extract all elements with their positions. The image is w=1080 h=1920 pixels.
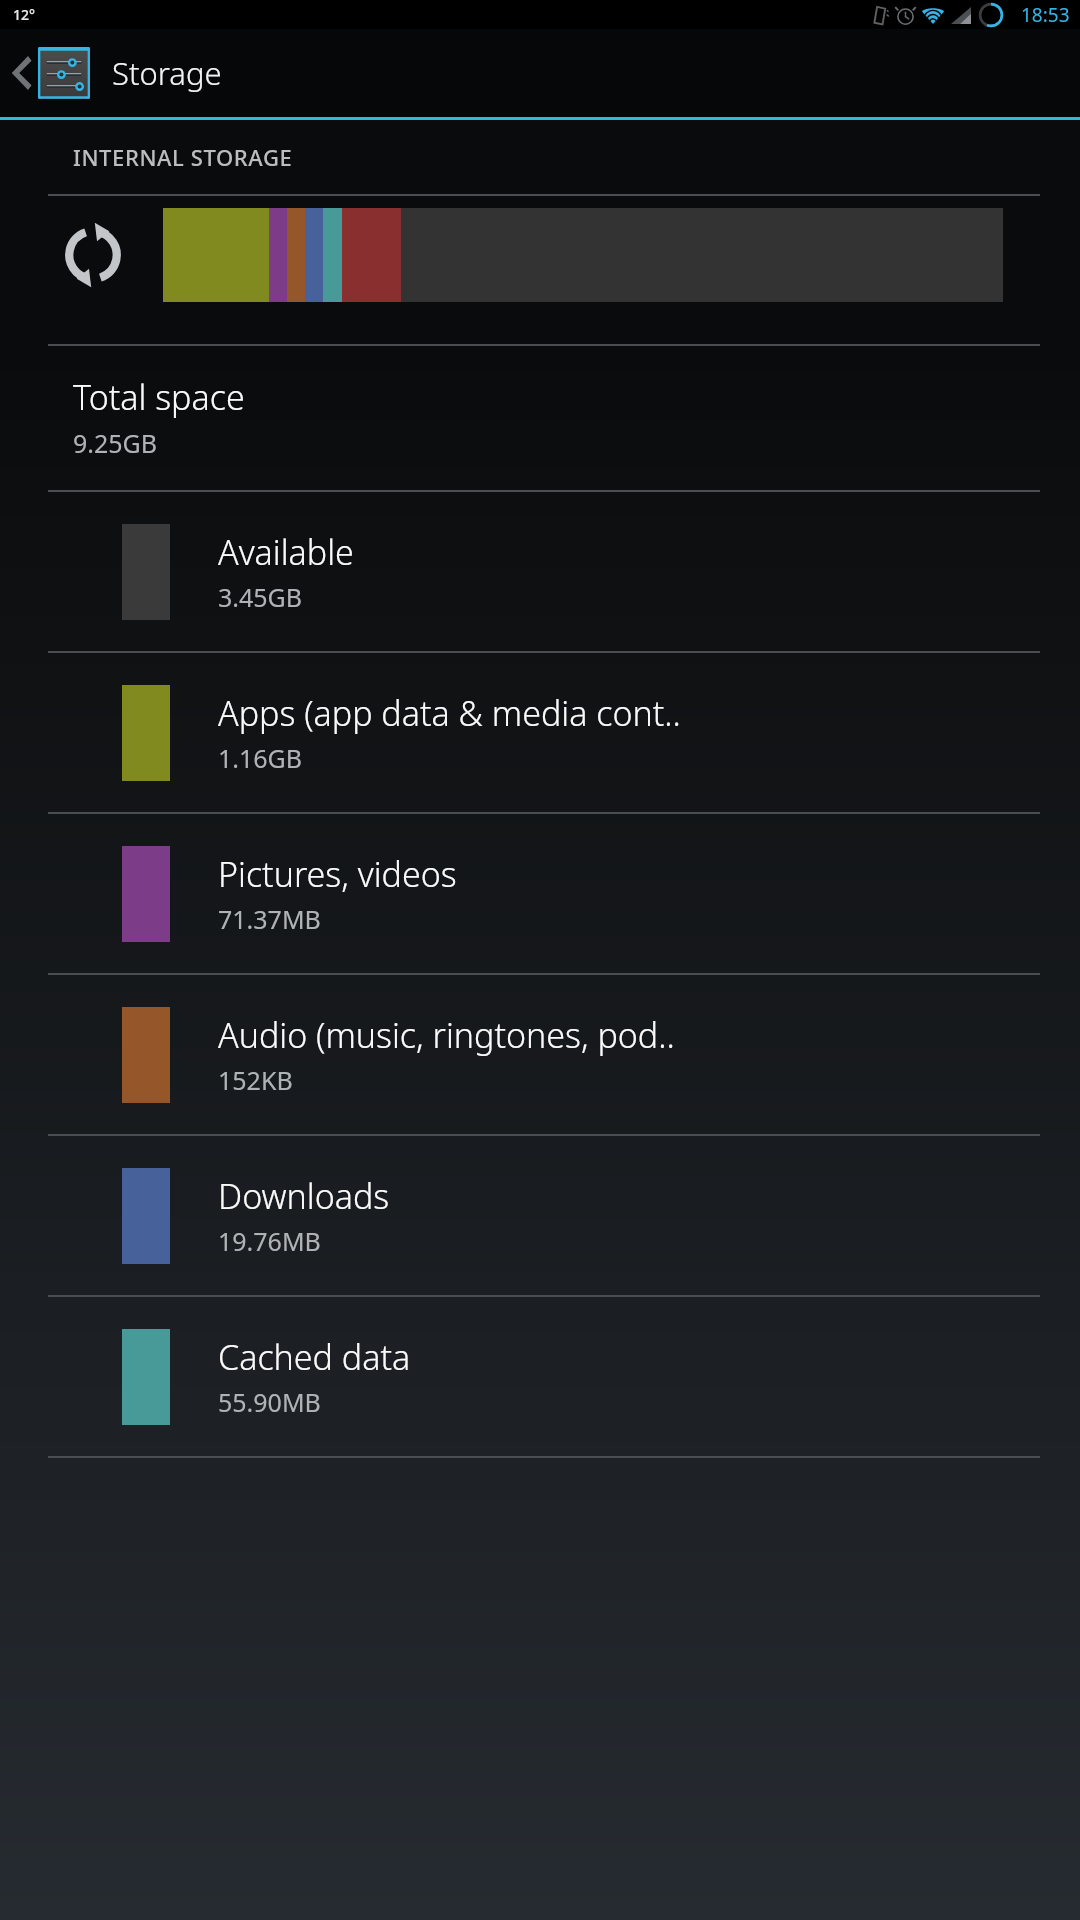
staticText: Audio (music, ringtones, pod..: [218, 1012, 675, 1058]
button[interactable]: Navigate up: [0, 29, 96, 117]
staticText: 1.16GB: [218, 741, 303, 775]
staticText: 19.76MB: [218, 1224, 321, 1258]
other: Refresh: [57, 219, 129, 291]
staticText: 152KB: [218, 1063, 293, 1097]
staticText: Downloads: [218, 1173, 390, 1219]
button[interactable]: Downloads: [0, 1136, 1080, 1295]
staticText: INTERNAL STORAGE: [73, 142, 293, 172]
button[interactable]: Apps (app data & media cont..: [0, 653, 1080, 812]
button[interactable]: Refresh storage usage: [0, 196, 1080, 314]
staticText: Available: [218, 529, 354, 575]
staticText: Total space: [73, 374, 245, 420]
staticText: Storage: [112, 52, 222, 94]
staticText: Cached data: [218, 1334, 411, 1380]
button[interactable]: Total space: [0, 346, 1080, 490]
button[interactable]: Pictures, videos: [0, 814, 1080, 973]
staticText: 9.25GB: [73, 426, 158, 460]
staticText: 55.90MB: [218, 1385, 321, 1419]
staticText: 71.37MB: [218, 902, 321, 936]
button[interactable]: Audio (music, ringtones, pod..: [0, 975, 1080, 1134]
button[interactable]: Cached data: [0, 1297, 1080, 1456]
staticText: Pictures, videos: [218, 851, 457, 897]
staticText: Apps (app data & media cont..: [218, 690, 681, 736]
staticText: 18:53: [1021, 2, 1070, 28]
staticText: 12°: [13, 5, 35, 24]
staticText: 3.45GB: [218, 580, 303, 614]
button[interactable]: Available: [0, 492, 1080, 651]
